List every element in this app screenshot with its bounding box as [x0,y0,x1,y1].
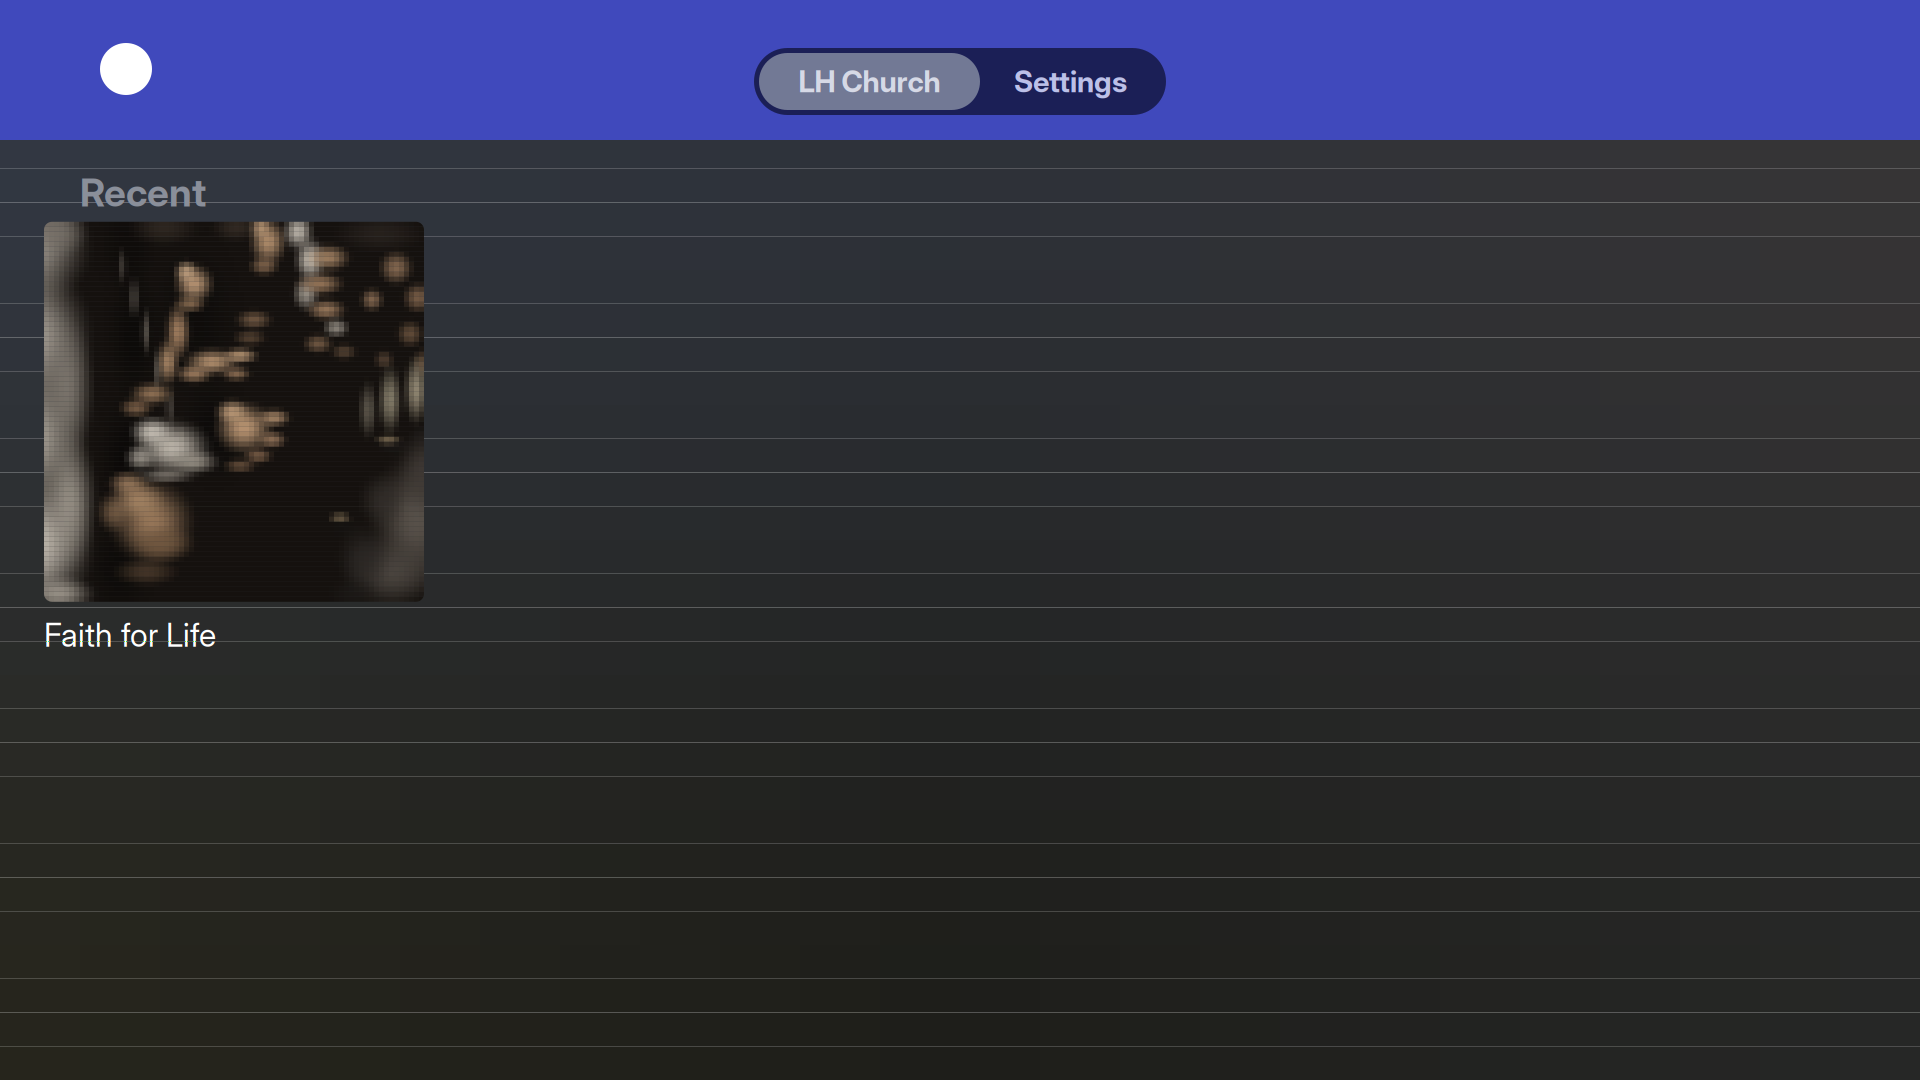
staticText: Faith for Life [44,616,216,654]
staticText: Recent [80,169,206,216]
button[interactable]: LH Church [759,53,980,110]
button[interactable]: Faith for Life [0,216,464,668]
staticText: Settings [1014,64,1127,99]
staticText: LH Church [798,64,940,99]
button[interactable]: Settings [980,53,1161,110]
button[interactable]: Profile [0,0,172,115]
